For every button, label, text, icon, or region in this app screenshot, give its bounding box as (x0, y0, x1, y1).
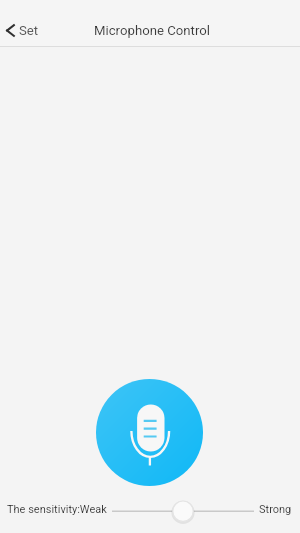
staticText: The sensitivity:Weak (7, 503, 107, 516)
button[interactable]: Sensitivity slider (112, 495, 254, 523)
button[interactable]: Microphone (96, 379, 203, 486)
staticText: Strong (259, 503, 292, 516)
button[interactable]: Back to Set (0, 19, 49, 42)
staticText: Set (19, 23, 39, 38)
staticText: Microphone Control (94, 23, 210, 38)
